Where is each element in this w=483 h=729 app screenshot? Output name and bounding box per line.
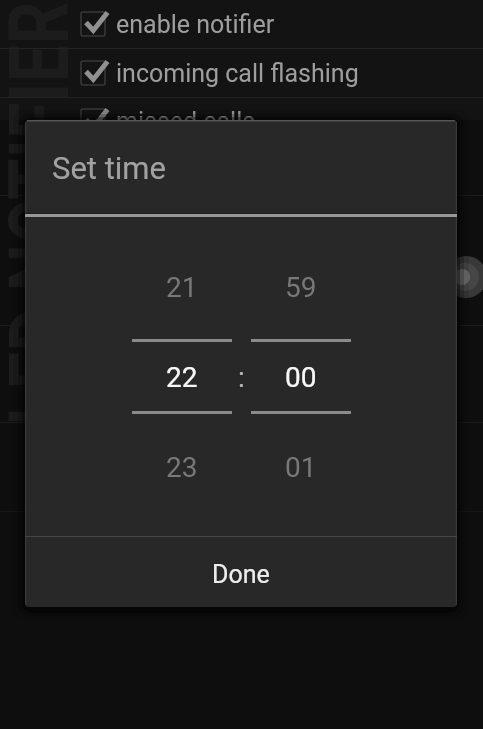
button[interactable]: 01	[251, 441, 351, 493]
button[interactable]: Done	[25, 539, 457, 607]
button[interactable]: missed calls	[0, 97, 483, 145]
staticText: Done	[212, 560, 270, 589]
staticText: enable notifier	[116, 10, 275, 39]
staticText: Set time	[52, 150, 166, 186]
staticText: 59	[285, 271, 317, 304]
button[interactable]: 59	[251, 261, 351, 313]
staticText: 21	[166, 271, 198, 304]
button[interactable]: 00	[251, 351, 351, 403]
staticText: LED NOTIFIER	[0, 1, 88, 426]
staticText: :	[238, 361, 245, 394]
staticText: 01	[285, 451, 317, 484]
staticText: incoming call flashing	[116, 59, 359, 88]
button[interactable]: enable notifier	[0, 0, 483, 48]
staticText: 22	[166, 361, 198, 394]
button[interactable]: 22	[132, 351, 232, 403]
button[interactable]: 21	[132, 261, 232, 313]
button[interactable]: 23	[132, 441, 232, 493]
button[interactable]: incoming call flashing	[0, 49, 483, 97]
staticText: 00	[285, 361, 317, 394]
staticText: 23	[166, 451, 198, 484]
staticText: missed calls	[116, 107, 256, 136]
